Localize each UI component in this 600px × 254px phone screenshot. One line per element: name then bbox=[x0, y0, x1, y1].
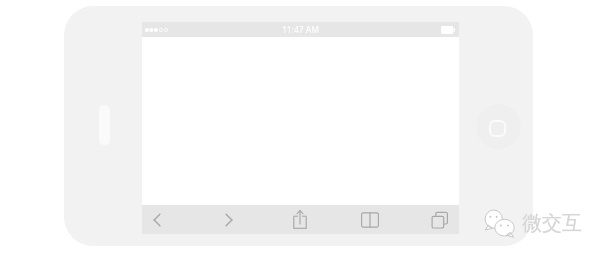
staticText: 11:47 AM bbox=[282, 24, 319, 35]
button[interactable]: Back bbox=[140, 205, 174, 234]
button[interactable]: Tabs bbox=[423, 205, 457, 234]
staticText: 微交互 bbox=[522, 211, 582, 236]
button[interactable]: Forward bbox=[212, 205, 246, 234]
button[interactable]: Bookmarks bbox=[353, 205, 387, 234]
button[interactable]: Share bbox=[283, 205, 317, 234]
